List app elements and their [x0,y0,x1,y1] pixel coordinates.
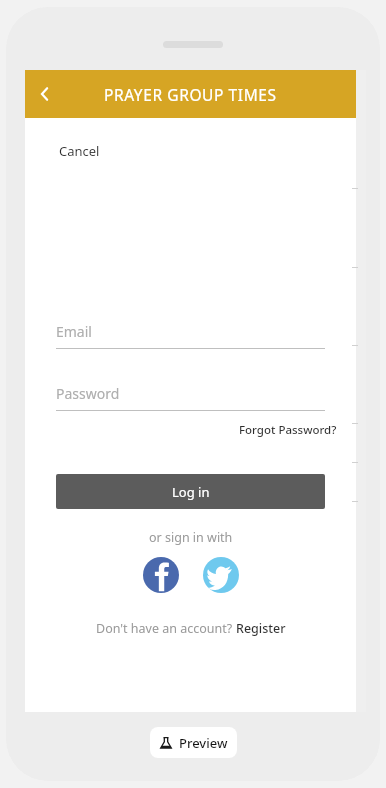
button[interactable]: Cancel [59,142,100,160]
staticText: or sign in with [149,529,233,546]
staticText: Email [56,322,92,341]
staticText: Cancel [59,142,100,160]
staticText: Register [236,620,286,637]
staticText: Log in [172,483,210,501]
button[interactable]: Back [25,74,65,114]
staticText: PRAYER GROUP TIMES [104,84,277,105]
button[interactable]: Forgot Password? [239,422,337,438]
staticText: Don't have an account? [96,620,236,637]
button[interactable]: Preview [150,727,237,758]
button[interactable]: Sign in with Facebook [143,557,179,593]
staticText: Password [56,384,120,403]
staticText: Preview [179,734,228,752]
button[interactable]: Log in [56,474,325,509]
button[interactable]: Don't have an account? [25,620,356,637]
button[interactable]: Sign in with Twitter [203,557,239,593]
staticText: Forgot Password? [239,422,337,438]
